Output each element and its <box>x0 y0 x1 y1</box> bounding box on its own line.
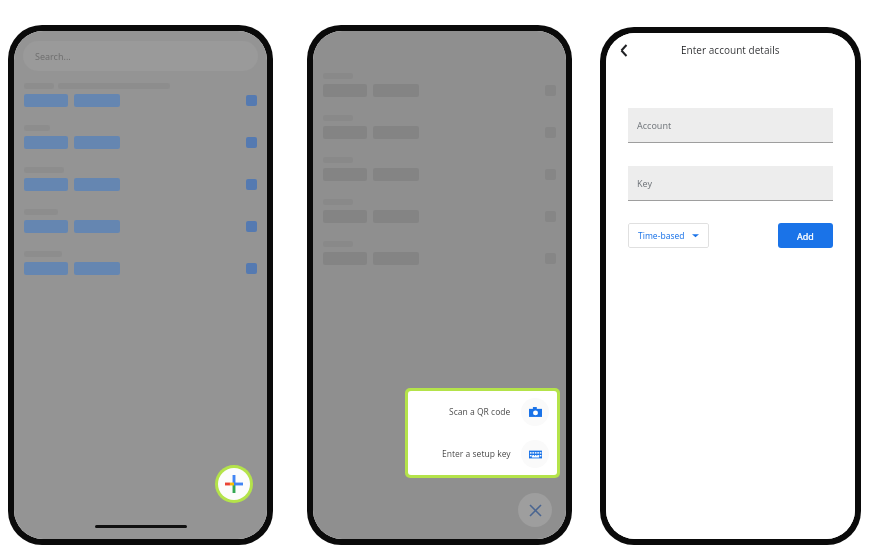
button[interactable]: Add <box>778 223 833 248</box>
button[interactable]: Time-based <box>628 223 709 248</box>
staticText: Enter account details <box>681 43 780 57</box>
button[interactable]: Close <box>518 493 552 527</box>
staticText: Search... <box>35 50 71 62</box>
staticText: Scan a QR code <box>449 406 511 418</box>
button[interactable]: Enter a setup key <box>408 433 557 475</box>
staticText: Key <box>637 177 653 189</box>
button[interactable]: Back <box>612 38 636 62</box>
staticText: Add <box>797 230 814 242</box>
button[interactable]: Account <box>628 108 833 143</box>
button[interactable]: Key <box>628 166 833 201</box>
staticText: Account <box>637 119 672 131</box>
staticText: Enter a setup key <box>442 448 511 460</box>
button[interactable]: Scan a QR code <box>408 391 557 433</box>
button[interactable]: Add account <box>218 468 250 500</box>
button[interactable]: Search... <box>23 41 258 71</box>
staticText: Time-based <box>638 230 685 242</box>
